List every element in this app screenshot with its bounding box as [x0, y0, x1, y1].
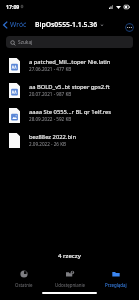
button[interactable]: aaaa Ste 0555...r BL qr 1elf.res: [0, 103, 139, 128]
staticText: BipOs0555-1.1.5.36: [35, 20, 98, 29]
button[interactable]: Ostatnie: [0, 268, 47, 288]
staticText: aaaa Ste 0555...r BL qr 1elf.res: [29, 108, 112, 116]
button[interactable]: aa BOLD_v5..bt stoper gps2.ft: [0, 78, 139, 103]
staticText: 4 rzeczy: [58, 252, 81, 260]
staticText: aa BOLD_v5..bt stoper gps2.ft: [29, 83, 110, 91]
button[interactable]: bez88ez 2022.bin: [0, 128, 139, 153]
staticText: Wróć: [10, 20, 27, 29]
button[interactable]: Wróć: [0, 18, 31, 31]
staticText: Szukaj: [18, 39, 33, 46]
button[interactable]: a patched_Mil...toper Nie.latin: [0, 53, 139, 78]
staticText: a patched_Mil...toper Nie.latin: [29, 58, 111, 66]
staticText: Udostępnianie: [55, 282, 86, 288]
staticText: 2.09.2022 - 26 KB: [29, 141, 67, 147]
button[interactable]: Szukaj: [6, 36, 133, 48]
staticText: bez88ez 2022.bin: [29, 133, 77, 141]
staticText: 20.07.2021 - 987 KB: [29, 91, 72, 97]
button[interactable]: Udostępnianie: [47, 268, 93, 288]
staticText: Przeglądaj: [105, 282, 127, 288]
staticText: 27.06.2021 - 477 KB: [29, 66, 72, 72]
staticText: Ostatnie: [15, 282, 33, 288]
button[interactable]: Przeglądaj: [93, 268, 139, 288]
button[interactable]: More options: [125, 23, 134, 32]
staticText: 17:09: [6, 3, 20, 10]
staticText: 28.09.2022 - 592 KB: [29, 116, 72, 122]
